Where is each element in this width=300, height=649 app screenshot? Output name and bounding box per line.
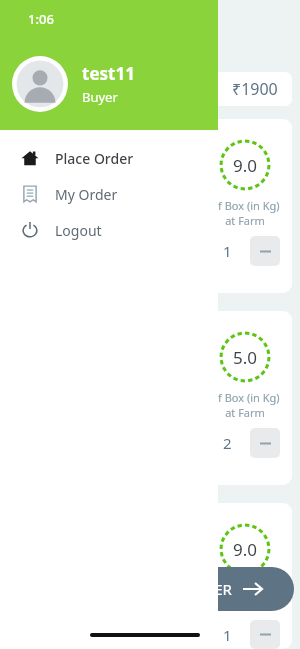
staticText: 2: [223, 433, 232, 453]
staticText: 1: [223, 241, 232, 261]
staticText: at Farm: [225, 597, 265, 612]
staticText: Buyer: [82, 88, 118, 106]
button[interactable]: ₹1900: [8, 72, 292, 106]
staticText: E ORDER: [170, 579, 232, 599]
button[interactable]: 9.0: [8, 503, 292, 649]
staticText: Of Box (in Kg): [209, 390, 280, 405]
button[interactable]: Place Order: [0, 140, 218, 176]
button[interactable]: E ORDER: [164, 567, 294, 611]
button[interactable]: Decrease quantity: [250, 428, 280, 458]
staticText: Of Box (in Kg): [209, 198, 280, 213]
button[interactable]: 9.0: [8, 119, 292, 293]
staticText: ₹1900: [232, 78, 278, 100]
staticText: Of Box (in Kg): [209, 582, 280, 597]
button[interactable]: Logout: [0, 212, 218, 248]
button[interactable]: 5.0: [8, 311, 292, 485]
staticText: My Order: [55, 185, 118, 204]
staticText: 9.0: [233, 154, 258, 177]
button[interactable]: Decrease quantity: [250, 620, 280, 649]
staticText: test11: [82, 62, 135, 85]
staticText: 5.0: [233, 346, 258, 369]
staticText: at Farm: [225, 405, 265, 420]
staticText: 1: [223, 625, 232, 645]
button[interactable]: Decrease quantity: [250, 236, 280, 266]
button[interactable]: My Order: [0, 176, 218, 212]
staticText: 1:06: [28, 10, 54, 28]
staticText: 9.0: [233, 538, 258, 561]
staticText: Logout: [55, 221, 102, 240]
staticText: Place Order: [55, 149, 134, 168]
staticText: at Farm: [225, 213, 265, 228]
